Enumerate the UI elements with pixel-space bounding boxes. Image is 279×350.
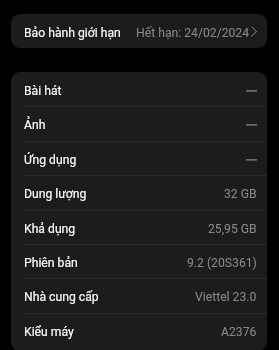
staticText: Dung lượng [24,187,87,201]
staticText: Bài hát [24,84,62,98]
staticText: Viettel 23.0 [195,290,257,304]
button[interactable]: Kiểu máy [11,313,267,347]
button[interactable]: Ứng dụng [11,141,267,175]
button[interactable]: Dung lượng [11,175,267,209]
button[interactable]: Phiên bản [11,244,267,278]
staticText: Kiểu máy [24,325,74,339]
other: Open warranty details [251,26,257,37]
button[interactable]: Ảnh [11,106,267,140]
staticText: 25,95 GB [208,222,257,236]
staticText: 32 GB [224,187,257,201]
staticText: Ảnh [24,118,46,132]
staticText: Nhà cung cấp [24,290,99,304]
staticText: Phiên bản [24,256,78,270]
staticText: Hết hạn: 24/02/2024 [136,26,250,40]
button[interactable]: Bài hát [11,72,267,106]
button[interactable]: Khả dụng [11,210,267,244]
staticText: Khả dụng [24,222,76,236]
staticText: Ứng dụng [24,153,77,167]
button[interactable]: Bảo hành giới hạn [11,14,267,48]
button[interactable]: Nhà cung cấp [11,278,267,312]
staticText: A2376 [221,325,257,339]
staticText: 9.2 (20S361) [187,256,257,270]
staticText: Bảo hành giới hạn [24,26,121,40]
